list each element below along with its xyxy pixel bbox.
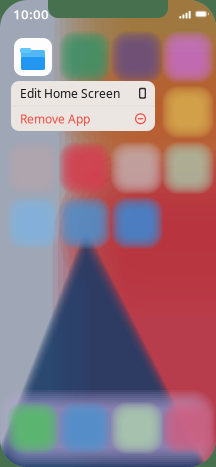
button[interactable]: Files: [14, 38, 52, 76]
button[interactable]: Edit Home Screen: [11, 81, 155, 106]
button[interactable]: Remove App: [11, 106, 155, 131]
staticText: Edit Home Screen: [20, 85, 120, 101]
staticText: Remove App: [20, 111, 90, 127]
staticText: 10:00: [13, 5, 49, 23]
